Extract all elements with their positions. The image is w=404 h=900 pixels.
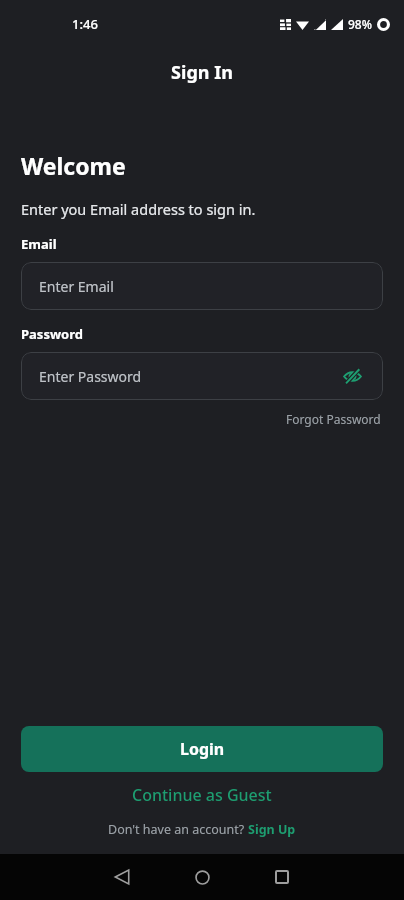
staticText: 1:46: [72, 15, 98, 33]
staticText: Welcome: [21, 150, 126, 181]
button[interactable]: Recent apps: [252, 854, 312, 900]
staticText: Sign Up: [248, 821, 296, 838]
staticText: Don't have an account?: [108, 821, 248, 838]
button[interactable]: Back: [92, 854, 152, 900]
staticText: 98%: [348, 16, 372, 32]
staticText: Enter Email: [39, 277, 114, 296]
staticText: Continue as Guest: [132, 784, 272, 806]
button[interactable]: Enter Email: [21, 262, 383, 310]
staticText: Forgot Password: [286, 411, 381, 427]
staticText: Password: [21, 325, 83, 343]
button[interactable]: Login: [21, 726, 383, 772]
button[interactable]: Don't have an account?: [104, 819, 300, 840]
button[interactable]: Enter Password: [21, 352, 383, 400]
staticText: Email: [21, 235, 57, 253]
button[interactable]: Forgot Password: [284, 409, 383, 429]
button[interactable]: Show password: [339, 363, 365, 389]
staticText: Sign In: [171, 60, 233, 85]
staticText: Enter Password: [39, 367, 142, 386]
button[interactable]: Continue as Guest: [124, 782, 280, 808]
button[interactable]: Home: [172, 854, 232, 900]
staticText: Login: [180, 738, 225, 760]
staticText: Enter you Email address to sign in.: [21, 199, 256, 219]
